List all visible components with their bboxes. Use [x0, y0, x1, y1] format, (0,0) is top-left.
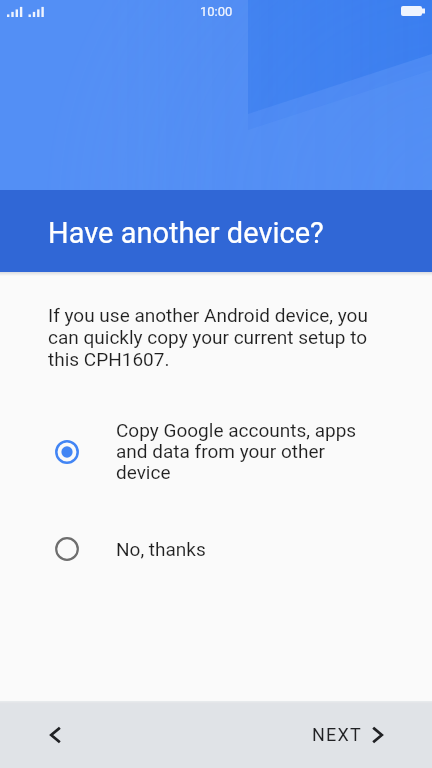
button[interactable]: No, thanks: [0, 537, 432, 561]
staticText: No, thanks: [116, 539, 366, 560]
staticText: Have another device?: [48, 216, 324, 250]
button[interactable]: Back: [33, 713, 77, 757]
staticText: 10:00: [200, 5, 233, 19]
staticText: NEXT: [312, 724, 362, 745]
button[interactable]: Copy Google accounts, apps and data from…: [0, 420, 432, 483]
staticText: If you use another Android device, you c…: [48, 305, 372, 371]
button[interactable]: NEXT: [306, 716, 392, 753]
staticText: Copy Google accounts, apps and data from…: [116, 420, 366, 483]
